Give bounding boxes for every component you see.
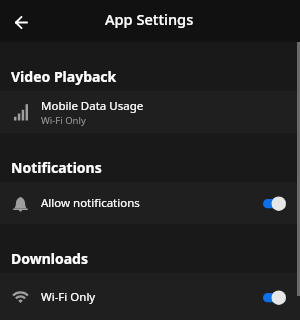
- staticText: Wi-Fi Only: [41, 289, 96, 305]
- button[interactable]: Back: [6, 7, 36, 37]
- button[interactable]: Wi-Fi Only: [0, 273, 300, 320]
- staticText: Video Playback: [11, 67, 117, 86]
- staticText: App Settings: [105, 9, 194, 29]
- staticText: Wi-Fi Only: [41, 114, 86, 127]
- staticText: Allow notifications: [41, 195, 140, 211]
- staticText: Notifications: [11, 158, 102, 177]
- button[interactable]: Allow notifications: [0, 182, 300, 224]
- staticText: Downloads: [11, 249, 88, 268]
- staticText: Mobile Data Usage: [41, 98, 144, 114]
- button[interactable]: Allow notifications: [263, 195, 286, 211]
- button[interactable]: Mobile Data Usage: [0, 91, 300, 133]
- button[interactable]: Wi-Fi Only: [263, 289, 286, 305]
